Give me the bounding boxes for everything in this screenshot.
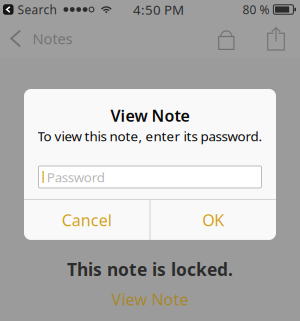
button[interactable]: Share [261, 26, 291, 51]
staticText: 4:50 PM [133, 1, 184, 18]
button[interactable]: Lock Note [212, 28, 240, 49]
staticText: View Note [110, 105, 189, 126]
button[interactable]: Search [3, 1, 56, 17]
staticText: Search [17, 1, 56, 17]
staticText: View Note [111, 289, 188, 310]
button[interactable]: Notes [0, 21, 82, 56]
staticText: Notes [32, 29, 72, 48]
button[interactable]: View Note [111, 289, 188, 310]
staticText: This note is locked. [67, 258, 233, 281]
button[interactable]: OK [150, 200, 276, 240]
staticText: Password [47, 168, 105, 186]
staticText: To view this note, enter its password. [37, 127, 262, 145]
button[interactable]: Cancel [24, 200, 149, 240]
staticText: Cancel [62, 209, 112, 230]
staticText: OK [202, 209, 224, 230]
staticText: 80 % [242, 1, 269, 17]
